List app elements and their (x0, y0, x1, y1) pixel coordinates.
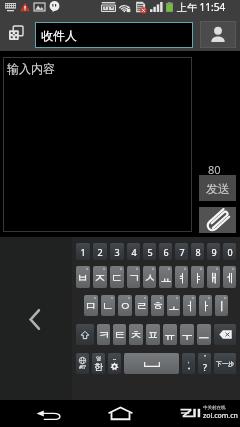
button[interactable]: 7 (175, 243, 188, 260)
button[interactable]: ㄹ (135, 295, 148, 316)
button[interactable]: ㅕ (175, 266, 188, 288)
staticText: 7 (179, 246, 185, 258)
staticText: ㅓ (184, 298, 196, 313)
button[interactable]: Contacts (200, 21, 236, 48)
staticText: ㅕ (176, 270, 188, 285)
button[interactable]: ㅐ (207, 266, 220, 288)
button[interactable]: ㄱ (127, 266, 140, 288)
staticText: ㅠ (164, 327, 176, 342)
staticText: 6 (163, 246, 169, 258)
button[interactable]: ㅇ (118, 295, 132, 316)
staticText: " (204, 354, 207, 361)
button[interactable]: 0 (223, 243, 236, 260)
staticText: 영 (96, 355, 101, 361)
button[interactable]: Back (32, 403, 66, 424)
staticText: ㄴ (102, 298, 114, 313)
button[interactable]: ㅡ (197, 324, 211, 345)
button[interactable]: ㅗ (167, 295, 180, 316)
button[interactable]: Period (182, 353, 195, 374)
staticText: ㅐ (208, 270, 220, 285)
staticText: 发送 (206, 181, 230, 196)
button[interactable]: ㄷ (110, 266, 124, 288)
staticText: ㅌ (114, 327, 126, 342)
staticText: ㅊ (130, 327, 142, 342)
staticText: ㅋ (98, 327, 110, 342)
staticText: zol.com.cn (203, 411, 238, 421)
button[interactable]: Shift (76, 324, 94, 345)
staticText: 中关村在线 (203, 405, 226, 411)
staticText: ㅈ (94, 270, 106, 285)
button[interactable]: 8 (191, 243, 204, 260)
staticText: ㅗ (168, 298, 180, 313)
button[interactable]: 收件人 (35, 22, 193, 48)
button[interactable]: ㅑ (191, 266, 204, 288)
button[interactable]: ㅅ (143, 266, 156, 288)
button[interactable]: 发送 (199, 175, 236, 201)
staticText: 한 (94, 361, 103, 372)
staticText: ㅂ (77, 270, 89, 285)
button[interactable]: ㅌ (113, 324, 126, 345)
button[interactable]: 输入内容 (3, 57, 192, 232)
staticText: #!? (79, 364, 86, 371)
staticText: ㅇ (119, 298, 131, 313)
staticText: 上午 11:54 (177, 0, 226, 14)
button[interactable]: ㅋ (97, 324, 110, 345)
staticText: ㅔ (224, 270, 236, 285)
button[interactable]: ㅠ (163, 324, 177, 345)
staticText: 80 (208, 162, 221, 177)
staticText: 输入内容 (7, 61, 55, 76)
button[interactable]: 3 (110, 243, 124, 260)
button[interactable]: ㅣ (215, 295, 228, 316)
staticText: ㄹ (136, 298, 148, 313)
staticText: 8 (195, 246, 201, 258)
staticText: ㅣ (216, 298, 228, 313)
button[interactable]: Home (104, 403, 136, 424)
button[interactable]: Backspace (214, 324, 236, 345)
button[interactable]: ㅓ (183, 295, 196, 316)
button[interactable]: ㅜ (180, 324, 194, 345)
button[interactable]: ㅍ (146, 324, 160, 345)
staticText: 0 (227, 246, 233, 258)
button[interactable]: ㄴ (101, 295, 115, 316)
button[interactable]: Attach (199, 207, 236, 233)
staticText: ㄷ (111, 270, 123, 285)
button[interactable]: 5 (143, 243, 156, 260)
button[interactable]: Keyboard settings (108, 353, 121, 374)
staticText: 9 (211, 246, 217, 258)
button[interactable]: 9 (207, 243, 220, 260)
button[interactable]: Symbols (76, 353, 89, 374)
button[interactable]: ㅊ (129, 324, 143, 345)
button[interactable]: ㅁ (84, 295, 98, 316)
staticText: 3 (114, 246, 120, 258)
staticText: ㄱ (128, 270, 140, 285)
button[interactable]: ㅏ (199, 295, 212, 316)
button[interactable]: ㅂ (76, 266, 90, 288)
button[interactable]: ㅈ (93, 266, 107, 288)
button[interactable]: ㅔ (223, 266, 236, 288)
staticText: 5 (147, 246, 153, 258)
button[interactable]: 4 (127, 243, 140, 260)
staticText: ㅎ (152, 298, 164, 313)
button[interactable]: 2 (93, 243, 107, 260)
staticText: ㅏ (200, 298, 212, 313)
button[interactable]: ㅎ (151, 295, 164, 316)
staticText: ㅍ (147, 327, 159, 342)
button[interactable]: 1 (76, 243, 90, 260)
staticText: •• (113, 357, 117, 362)
button[interactable]: Space (124, 353, 179, 374)
button[interactable]: Question mark (198, 353, 211, 374)
staticText: ㅑ (192, 270, 204, 285)
button[interactable]: Language (92, 353, 105, 374)
button[interactable]: Hide keyboard (0, 237, 72, 400)
staticText: 收件人 (41, 28, 77, 43)
staticText: ? (203, 361, 207, 373)
staticText: ㅜ (181, 327, 193, 342)
button[interactable]: Next (214, 353, 236, 374)
staticText: , (188, 358, 190, 365)
staticText: ㅅ (144, 270, 156, 285)
button[interactable]: ㅛ (159, 266, 172, 288)
staticText: 1 (80, 246, 86, 258)
button[interactable]: Multi window (4, 20, 28, 46)
button[interactable]: 6 (159, 243, 172, 260)
staticText: ㅡ (198, 327, 210, 342)
